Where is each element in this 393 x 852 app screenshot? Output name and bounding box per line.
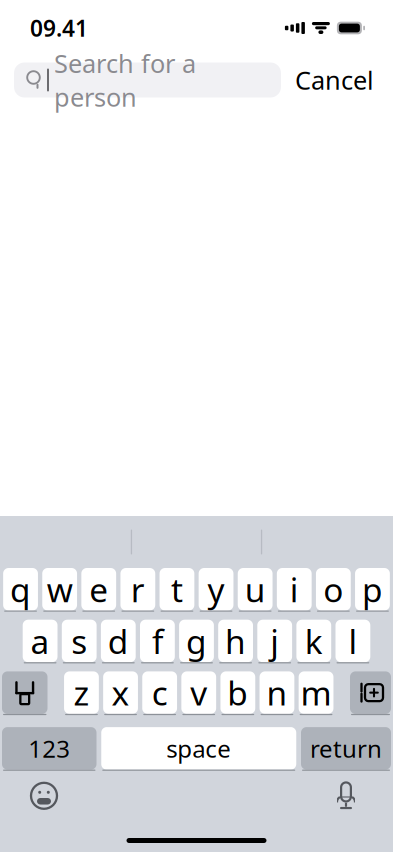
button[interactable]: v — [181, 671, 216, 715]
staticText: Search for a person — [54, 46, 196, 114]
button[interactable]: s — [62, 620, 97, 663]
staticText: g — [186, 619, 207, 663]
button[interactable]: q — [3, 568, 38, 612]
button[interactable]: w — [42, 568, 77, 612]
staticText: space — [166, 732, 231, 764]
button[interactable]: d — [101, 620, 136, 663]
button[interactable]: t — [159, 568, 194, 612]
staticText: z — [73, 670, 89, 715]
staticText: p — [362, 567, 383, 611]
button[interactable]: r — [120, 568, 155, 612]
staticText: h — [225, 619, 246, 663]
button[interactable]: y — [199, 568, 233, 612]
button[interactable]: j — [257, 620, 292, 663]
button[interactable]: z — [64, 671, 99, 715]
staticText: i — [290, 567, 299, 611]
button[interactable]: e — [81, 568, 116, 612]
button[interactable]: Delete — [350, 671, 391, 715]
staticText: a — [31, 619, 50, 663]
button[interactable]: u — [238, 568, 272, 612]
button[interactable]: Dictation — [319, 775, 373, 817]
button[interactable]: x — [103, 671, 138, 715]
staticText: s — [71, 619, 87, 663]
button[interactable]: return — [301, 727, 391, 771]
button[interactable]: f — [140, 620, 175, 663]
staticText: e — [89, 567, 108, 611]
button[interactable]: 123 — [2, 727, 96, 771]
staticText: c — [152, 670, 168, 715]
staticText: f — [152, 619, 163, 663]
button[interactable]: l — [335, 620, 370, 663]
staticText: b — [227, 670, 248, 715]
staticText: 123 — [28, 732, 70, 764]
staticText: 09.41 — [30, 13, 88, 43]
staticText: v — [190, 670, 207, 715]
staticText: r — [131, 567, 145, 611]
button[interactable]: Emoji keyboard — [17, 775, 71, 817]
button[interactable]: k — [296, 620, 331, 663]
button[interactable]: g — [179, 620, 214, 663]
staticText: d — [108, 619, 129, 663]
staticText: n — [266, 670, 287, 715]
button[interactable]: a — [23, 620, 57, 663]
staticText: y — [207, 567, 224, 611]
staticText: w — [47, 567, 73, 611]
staticText: Cancel — [295, 63, 374, 97]
button[interactable]: h — [218, 620, 253, 663]
button[interactable]: Shift — [2, 671, 47, 715]
button[interactable]: p — [355, 568, 390, 612]
staticText: j — [270, 619, 279, 663]
staticText: o — [323, 567, 343, 611]
staticText: m — [300, 670, 331, 715]
staticText: k — [305, 619, 323, 663]
button[interactable]: c — [142, 671, 177, 715]
button[interactable]: m — [299, 671, 333, 715]
staticText: x — [111, 670, 129, 715]
staticText: l — [348, 619, 357, 663]
button[interactable]: b — [220, 671, 255, 715]
staticText: q — [10, 567, 31, 611]
staticText: u — [245, 567, 266, 611]
staticText: t — [171, 567, 183, 611]
button[interactable]: o — [316, 568, 351, 612]
staticText: return — [310, 732, 382, 764]
button[interactable]: space — [101, 727, 296, 771]
button[interactable]: i — [277, 568, 312, 612]
button[interactable]: Cancel — [281, 59, 387, 101]
button[interactable]: n — [259, 671, 294, 715]
